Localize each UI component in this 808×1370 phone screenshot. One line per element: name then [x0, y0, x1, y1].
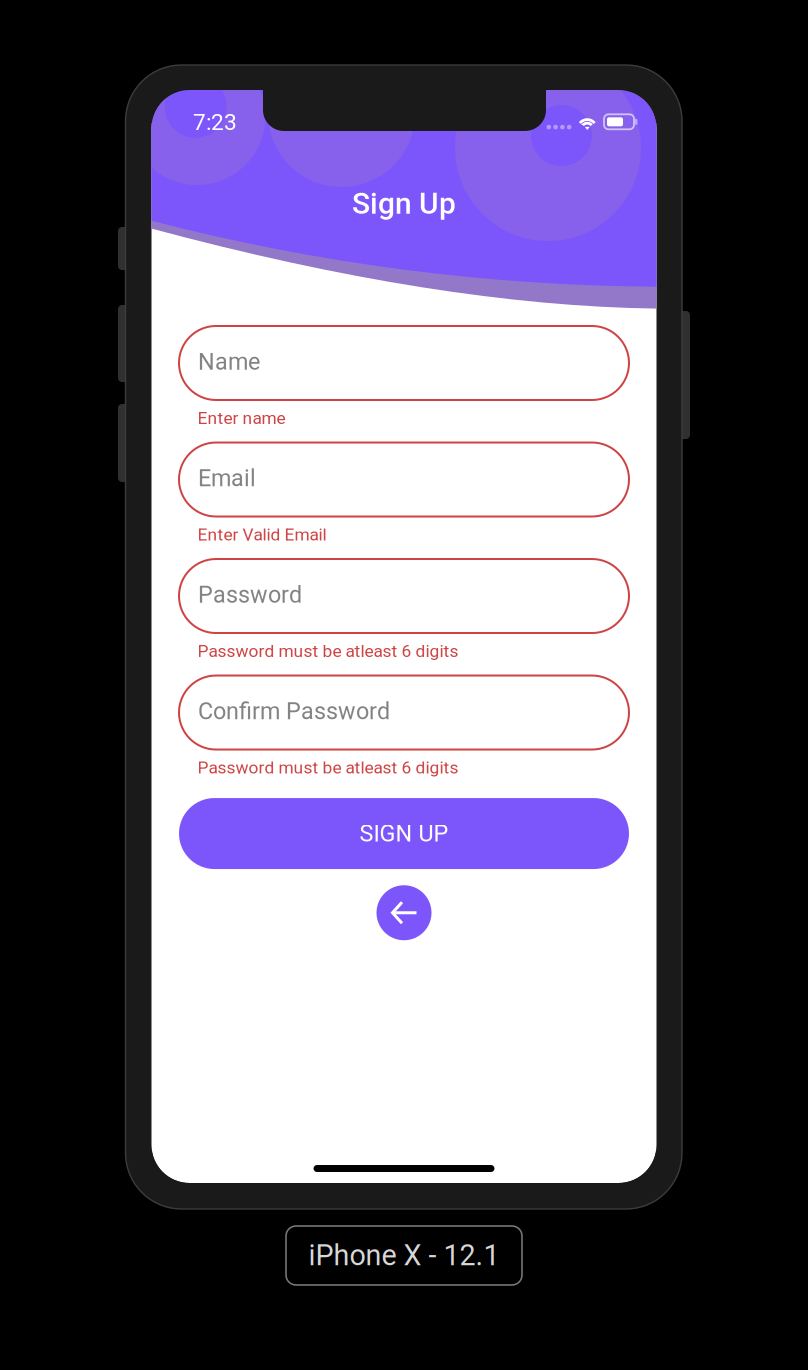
button[interactable]: Password	[179, 559, 629, 633]
staticText: Password	[198, 581, 302, 608]
button[interactable]: Name	[179, 326, 629, 400]
staticText: 7:23	[193, 109, 237, 136]
staticText: Enter name	[197, 408, 285, 428]
staticText: Sign Up	[352, 186, 456, 221]
button[interactable]: Confirm Password	[179, 675, 629, 749]
staticText: SIGN UP	[359, 820, 448, 847]
staticText: Name	[198, 348, 260, 375]
button[interactable]: Back	[376, 885, 431, 940]
button[interactable]: Email	[179, 442, 629, 516]
button[interactable]: SIGN UP	[179, 798, 629, 869]
staticText: Password must be atleast 6 digits	[197, 757, 458, 778]
staticText: iPhone X - 12.1	[308, 1239, 499, 1272]
staticText: Enter Valid Email	[197, 524, 326, 545]
staticText: Confirm Password	[198, 698, 390, 725]
staticText: Email	[198, 465, 256, 492]
staticText: Password must be atleast 6 digits	[197, 641, 458, 661]
